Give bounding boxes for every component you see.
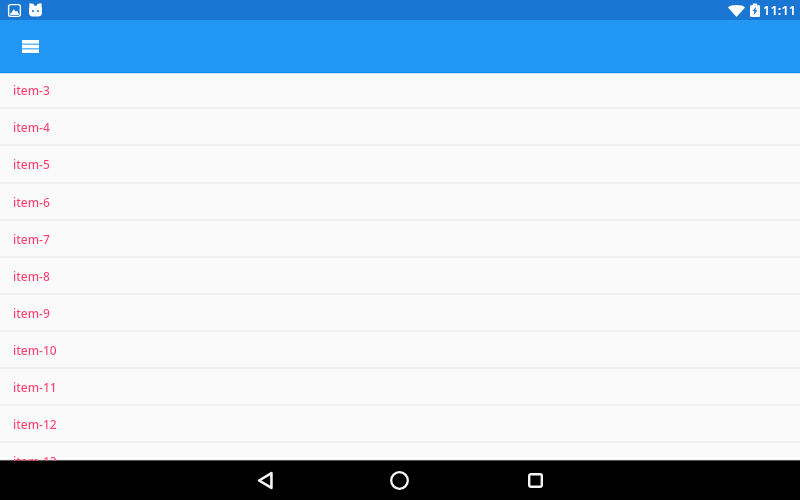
button[interactable]: Open navigation drawer bbox=[14, 30, 46, 62]
button[interactable]: item-13 bbox=[0, 442, 800, 461]
button[interactable]: item-12 bbox=[0, 405, 800, 442]
staticText: item-3 bbox=[13, 82, 50, 98]
button[interactable]: item-7 bbox=[0, 220, 800, 257]
button[interactable]: item-9 bbox=[0, 294, 800, 331]
staticText: item-7 bbox=[13, 231, 50, 247]
staticText: 11:11 bbox=[763, 1, 797, 19]
staticText: item-12 bbox=[13, 416, 57, 432]
staticText: item-8 bbox=[13, 268, 50, 284]
button[interactable]: item-6 bbox=[0, 183, 800, 220]
button[interactable]: item-3 bbox=[0, 73, 800, 108]
button[interactable]: Recents bbox=[515, 461, 555, 500]
button[interactable]: item-5 bbox=[0, 145, 800, 183]
staticText: item-13 bbox=[13, 453, 57, 461]
button[interactable]: item-4 bbox=[0, 108, 800, 145]
button[interactable]: Home bbox=[379, 461, 419, 500]
button[interactable]: item-11 bbox=[0, 368, 800, 405]
staticText: item-9 bbox=[13, 305, 50, 321]
staticText: item-10 bbox=[13, 342, 57, 358]
button[interactable]: Back bbox=[245, 461, 285, 500]
staticText: item-11 bbox=[13, 379, 57, 395]
staticText: item-5 bbox=[13, 156, 50, 172]
staticText: item-6 bbox=[13, 194, 50, 210]
button[interactable]: item-10 bbox=[0, 331, 800, 368]
staticText: item-4 bbox=[13, 119, 50, 135]
button[interactable]: item-8 bbox=[0, 257, 800, 294]
